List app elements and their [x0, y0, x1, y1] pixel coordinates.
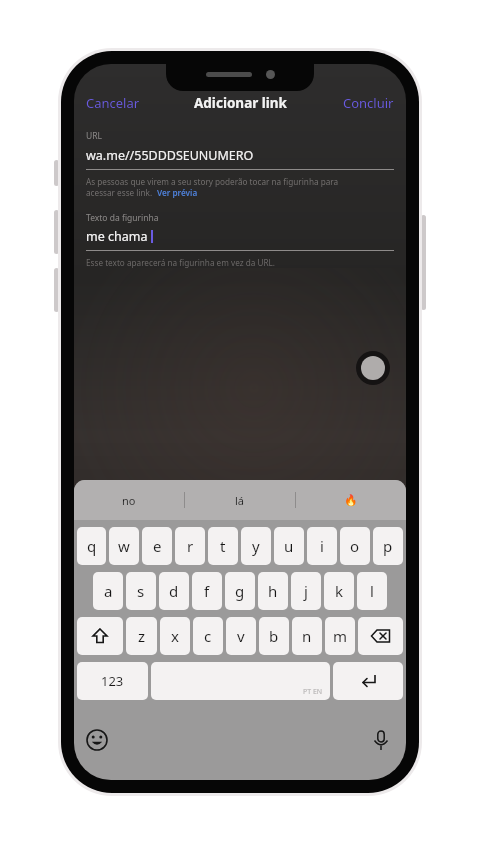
- button[interactable]: r: [175, 527, 205, 565]
- staticText: j: [304, 581, 308, 601]
- staticText: 123: [101, 672, 124, 690]
- staticText: no: [122, 493, 136, 508]
- staticText: r: [187, 536, 194, 556]
- button[interactable]: 🔥: [296, 480, 406, 520]
- button[interactable]: Concluir: [331, 89, 406, 117]
- button[interactable]: b: [259, 617, 289, 655]
- button[interactable]: Microphone: [368, 727, 394, 753]
- staticText: n: [302, 626, 312, 646]
- staticText: b: [269, 626, 279, 646]
- button[interactable]: q: [77, 527, 106, 565]
- button[interactable]: g: [225, 572, 255, 610]
- button[interactable]: m: [325, 617, 355, 655]
- button[interactable]: 123: [77, 662, 148, 700]
- button[interactable]: Cancelar: [74, 89, 152, 117]
- button[interactable]: z: [126, 617, 157, 655]
- staticText: acessar esse link.: [86, 187, 153, 198]
- button[interactable]: k: [324, 572, 354, 610]
- button[interactable]: c: [193, 617, 223, 655]
- staticText: me chama: [86, 228, 148, 245]
- staticText: x: [171, 626, 179, 646]
- button[interactable]: y: [241, 527, 271, 565]
- staticText: URL: [86, 130, 102, 142]
- staticText: g: [235, 581, 245, 601]
- staticText: t: [220, 536, 226, 556]
- staticText: Concluir: [343, 94, 394, 112]
- staticText: i: [320, 536, 324, 556]
- staticText: v: [237, 626, 245, 646]
- staticText: Ver prévia: [157, 187, 198, 198]
- staticText: As pessoas que virem a seu story poderão…: [86, 176, 339, 187]
- button[interactable]: d: [159, 572, 189, 610]
- button[interactable]: s: [126, 572, 156, 610]
- button[interactable]: t: [208, 527, 238, 565]
- staticText: z: [138, 626, 146, 646]
- button[interactable]: h: [258, 572, 288, 610]
- button[interactable]: a: [93, 572, 123, 610]
- button[interactable]: o: [340, 527, 370, 565]
- button[interactable]: f: [192, 572, 222, 610]
- staticText: u: [284, 536, 294, 556]
- button[interactable]: no: [74, 480, 184, 520]
- staticText: e: [153, 536, 162, 556]
- button[interactable]: Enter: [333, 662, 403, 700]
- staticText: Cancelar: [86, 94, 140, 112]
- staticText: 🔥: [344, 494, 358, 507]
- button[interactable]: u: [274, 527, 304, 565]
- staticText: PT EN: [303, 687, 323, 697]
- button[interactable]: i: [307, 527, 337, 565]
- button[interactable]: Backspace: [358, 617, 403, 655]
- button[interactable]: p: [373, 527, 403, 565]
- button[interactable]: lá: [185, 480, 295, 520]
- button[interactable]: Emoji: [84, 727, 110, 753]
- staticText: p: [383, 536, 393, 556]
- staticText: a: [104, 581, 113, 601]
- button[interactable]: Ver prévia: [157, 187, 198, 198]
- button[interactable]: wa.me//55DDDSEUNUMERO: [86, 147, 394, 164]
- button[interactable]: Shutter: [361, 356, 385, 380]
- staticText: Esse texto aparecerá na figurinha em vez…: [86, 257, 276, 268]
- staticText: Adicionar link: [194, 94, 287, 112]
- staticText: c: [204, 626, 212, 646]
- staticText: wa.me//55DDDSEUNUMERO: [86, 147, 254, 164]
- staticText: lá: [235, 493, 245, 508]
- staticText: w: [118, 536, 130, 556]
- staticText: d: [169, 581, 179, 601]
- staticText: k: [335, 581, 344, 601]
- button[interactable]: x: [160, 617, 190, 655]
- staticText: s: [137, 581, 145, 601]
- staticText: y: [252, 536, 260, 556]
- button[interactable]: w: [109, 527, 139, 565]
- button[interactable]: Shift: [77, 617, 123, 655]
- staticText: o: [350, 536, 360, 556]
- staticText: h: [268, 581, 278, 601]
- button[interactable]: n: [292, 617, 322, 655]
- staticText: q: [87, 536, 97, 556]
- staticText: Texto da figurinha: [86, 212, 159, 224]
- button[interactable]: Space: [151, 662, 330, 700]
- button[interactable]: e: [142, 527, 172, 565]
- button[interactable]: l: [357, 572, 387, 610]
- button[interactable]: j: [291, 572, 321, 610]
- button[interactable]: me chama: [86, 228, 394, 245]
- staticText: m: [333, 626, 348, 646]
- staticText: l: [370, 581, 374, 601]
- staticText: f: [204, 581, 210, 601]
- button[interactable]: v: [226, 617, 256, 655]
